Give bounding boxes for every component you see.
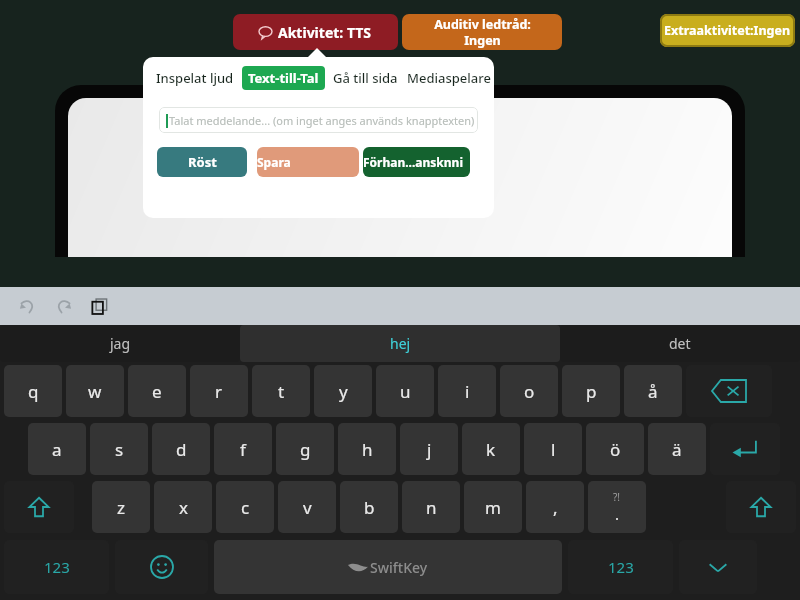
staticText: SwiftKey xyxy=(370,558,428,577)
staticText: o xyxy=(524,380,535,403)
staticText: n xyxy=(426,496,437,519)
button[interactable]: y xyxy=(314,365,372,417)
button[interactable]: , xyxy=(526,481,584,533)
button[interactable]: Förhan...ansknning xyxy=(363,147,470,177)
button[interactable]: Aktivitet: TTS xyxy=(233,14,398,50)
button[interactable]: l xyxy=(524,423,582,475)
button[interactable]: Space xyxy=(214,540,562,594)
button[interactable]: b xyxy=(340,481,398,533)
button[interactable]: p xyxy=(562,365,620,417)
button[interactable]: Enter xyxy=(710,423,780,475)
button[interactable]: Clipboard xyxy=(86,293,112,319)
button[interactable]: Röst xyxy=(157,147,247,177)
staticText: det xyxy=(669,334,691,353)
button[interactable]: h xyxy=(338,423,396,475)
staticText: Förhan...ansknning xyxy=(363,154,470,170)
button[interactable]: 123 xyxy=(4,540,109,594)
staticText: Aktivitet: TTS xyxy=(278,23,372,42)
staticText: , xyxy=(553,496,558,519)
staticText: u xyxy=(400,380,411,403)
button[interactable]: Backspace xyxy=(686,365,772,417)
button[interactable]: t xyxy=(252,365,310,417)
staticText: g xyxy=(300,438,311,461)
button[interactable]: q xyxy=(4,365,62,417)
button[interactable]: f xyxy=(214,423,272,475)
staticText: c xyxy=(241,496,250,519)
staticText: i xyxy=(465,380,470,403)
button[interactable]: r xyxy=(190,365,248,417)
button[interactable]: Spara so...inspelad. xyxy=(257,147,359,177)
staticText: z xyxy=(117,496,125,519)
staticText: x xyxy=(179,496,188,519)
staticText: m xyxy=(485,496,501,519)
staticText: å xyxy=(648,380,658,403)
staticText: ä xyxy=(672,438,682,461)
button[interactable]: j xyxy=(400,423,458,475)
staticText: f xyxy=(240,438,246,461)
button[interactable]: z xyxy=(92,481,150,533)
button[interactable]: m xyxy=(464,481,522,533)
button[interactable]: i xyxy=(438,365,496,417)
button[interactable]: o xyxy=(500,365,558,417)
button[interactable]: Shift xyxy=(726,481,796,533)
staticText: jag xyxy=(110,334,131,353)
staticText: r xyxy=(215,380,223,403)
button[interactable]: Emoji xyxy=(115,540,208,594)
button[interactable]: k xyxy=(462,423,520,475)
staticText: Text-till-Tal xyxy=(248,69,319,87)
staticText: p xyxy=(586,380,597,403)
button[interactable]: n xyxy=(402,481,460,533)
button[interactable]: Extraaktivitet:Ingen xyxy=(660,14,795,47)
button[interactable]: Talat meddelande... (om inget anges anvä… xyxy=(159,107,478,133)
staticText: Auditiv ledtråd: Ingen xyxy=(434,16,531,48)
button[interactable]: Mediaspelare xyxy=(407,69,491,87)
staticText: t xyxy=(278,380,285,403)
button[interactable]: Text-till-Tal xyxy=(242,66,325,90)
button[interactable]: a xyxy=(28,423,86,475)
staticText: s xyxy=(115,438,124,461)
button[interactable]: w xyxy=(66,365,124,417)
staticText: ?! xyxy=(613,490,621,504)
staticText: e xyxy=(152,380,162,403)
staticText: Spara so...inspelad. xyxy=(257,154,359,170)
staticText: j xyxy=(427,438,432,461)
button[interactable]: jag xyxy=(0,325,240,362)
staticText: . xyxy=(615,504,620,524)
button[interactable]: Undo xyxy=(14,293,40,319)
button[interactable]: Inspelat ljud xyxy=(156,69,234,87)
staticText: y xyxy=(339,380,348,403)
staticText: b xyxy=(364,496,375,519)
button[interactable]: s xyxy=(90,423,148,475)
staticText: ö xyxy=(610,438,621,461)
button[interactable]: Auditiv ledtråd: Ingen xyxy=(402,14,562,50)
button[interactable]: g xyxy=(276,423,334,475)
button[interactable]: ?! xyxy=(588,481,646,533)
staticText: k xyxy=(486,438,496,461)
staticText: w xyxy=(88,380,102,403)
staticText: hej xyxy=(390,334,411,353)
button[interactable]: det xyxy=(560,325,800,362)
button[interactable]: Redo xyxy=(50,293,76,319)
staticText: h xyxy=(362,438,373,461)
staticText: Extraaktivitet:Ingen xyxy=(664,22,791,39)
button[interactable]: Hide keyboard xyxy=(679,540,757,594)
staticText: a xyxy=(52,438,62,461)
staticText: d xyxy=(176,438,187,461)
button[interactable]: Gå till sida xyxy=(333,69,398,87)
button[interactable]: c xyxy=(216,481,274,533)
button[interactable]: d xyxy=(152,423,210,475)
staticText: Talat meddelande... (om inget anges anvä… xyxy=(169,113,475,128)
button[interactable]: x xyxy=(154,481,212,533)
button[interactable]: 123 xyxy=(568,540,673,594)
button[interactable]: u xyxy=(376,365,434,417)
button[interactable]: å xyxy=(624,365,682,417)
staticText: l xyxy=(551,438,556,461)
button[interactable]: v xyxy=(278,481,336,533)
button[interactable]: Shift xyxy=(4,481,74,533)
staticText: 123 xyxy=(44,557,70,577)
staticText: q xyxy=(28,380,39,403)
button[interactable]: hej xyxy=(240,325,560,362)
button[interactable]: e xyxy=(128,365,186,417)
button[interactable]: ö xyxy=(586,423,644,475)
button[interactable]: ä xyxy=(648,423,706,475)
